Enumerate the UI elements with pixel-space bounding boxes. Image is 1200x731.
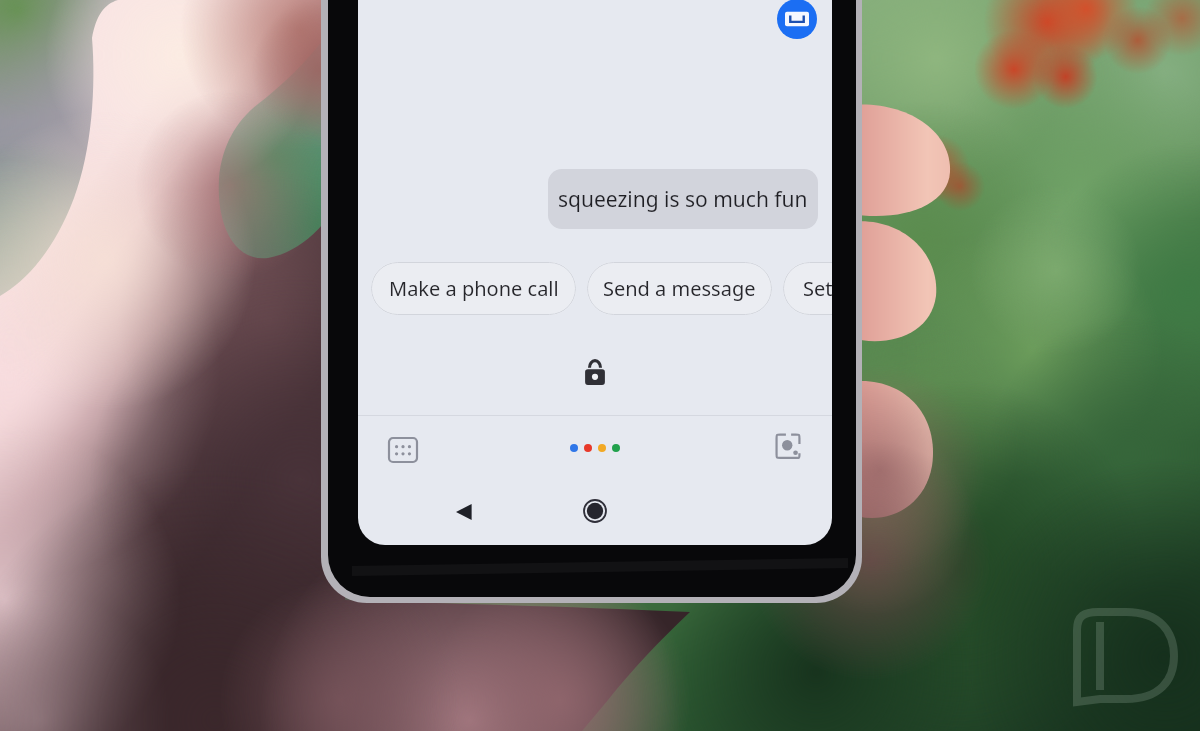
staticText: squeezing is so much fun: [558, 185, 808, 214]
button[interactable]: Locked: [577, 354, 613, 390]
button[interactable]: Set: [783, 262, 832, 315]
button[interactable]: Keyboard input: [382, 429, 424, 471]
button[interactable]: Make a phone call: [371, 262, 576, 315]
button[interactable]: Send a message: [587, 262, 772, 315]
button[interactable]: Home: [574, 490, 616, 532]
staticText: Send a message: [603, 275, 756, 302]
staticText: Set: [803, 275, 832, 302]
button[interactable]: Keyboard: [777, 0, 817, 39]
button[interactable]: Google Lens: [767, 425, 809, 467]
button[interactable]: Back: [443, 491, 485, 533]
staticText: Make a phone call: [389, 275, 559, 302]
